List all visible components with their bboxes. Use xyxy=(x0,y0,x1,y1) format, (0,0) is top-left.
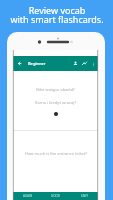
staticText: How much is the entrance ticket? xyxy=(25,151,87,156)
button[interactable]: GOOD xyxy=(42,192,70,200)
button[interactable]: Back xyxy=(15,59,24,68)
staticText: AGAIN xyxy=(23,194,33,198)
button[interactable]: AGAIN xyxy=(13,192,42,200)
button[interactable]: Statistics xyxy=(80,59,89,68)
staticText: Beginner xyxy=(28,61,46,66)
staticText: Komu i kiedyś wracaj? xyxy=(35,100,76,105)
button[interactable]: Profile xyxy=(71,59,80,68)
staticText: Review vocab with smart flashcards. xyxy=(10,4,104,26)
button[interactable]: More options xyxy=(89,60,97,68)
staticText: GOOD xyxy=(51,194,61,198)
staticText: Bilet wstępu obwód? xyxy=(36,87,75,92)
button[interactable]: EASY xyxy=(70,192,98,200)
staticText: EASY xyxy=(81,194,88,198)
